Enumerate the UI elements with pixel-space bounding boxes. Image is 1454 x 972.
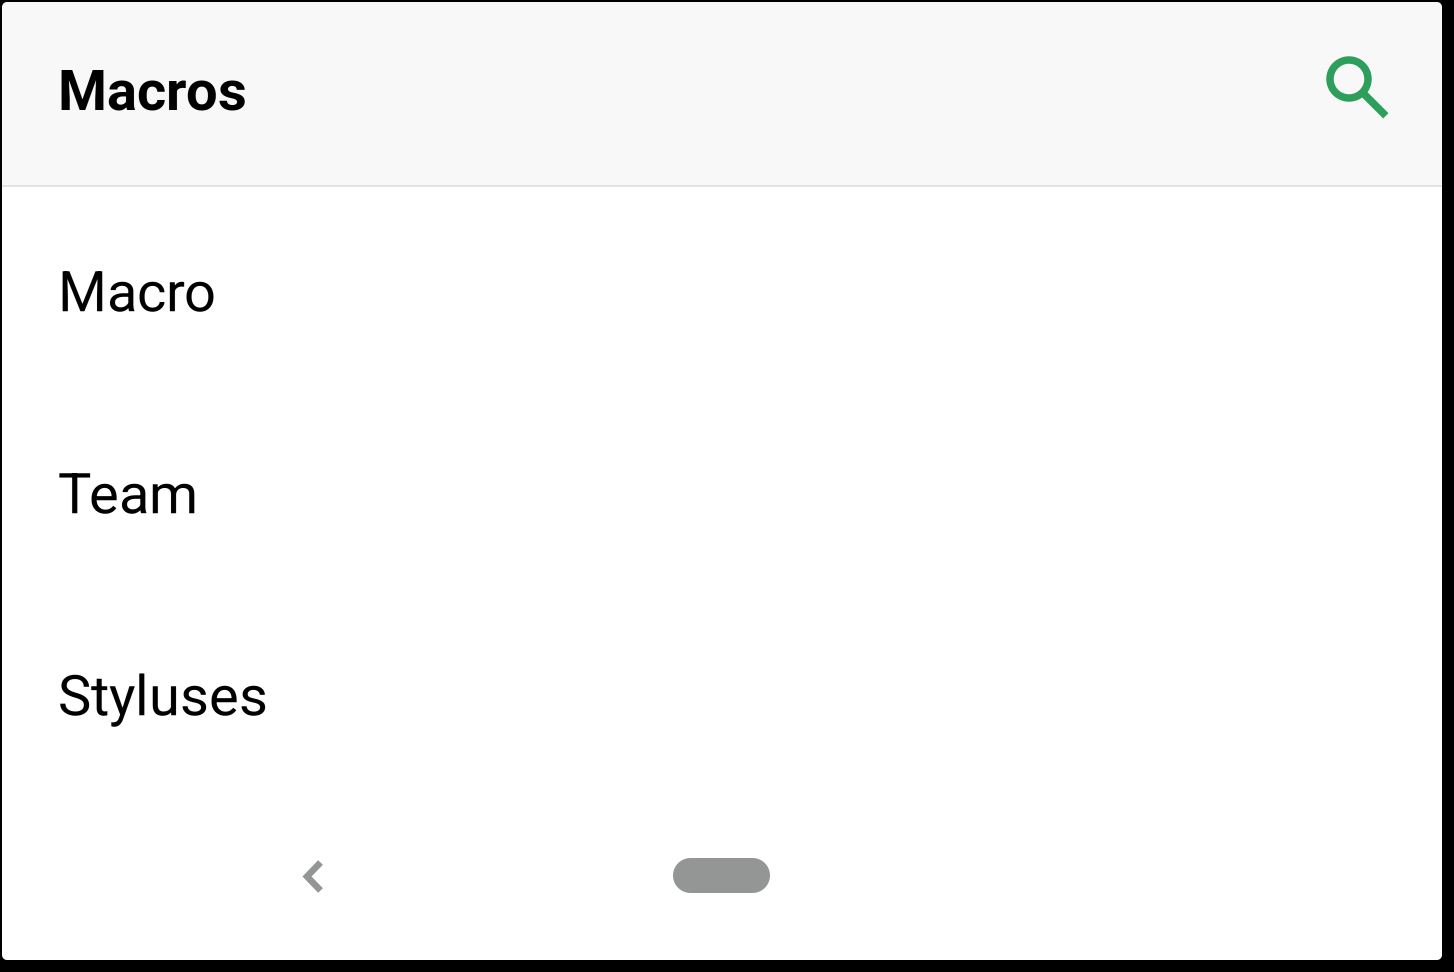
button[interactable]: Search (1311, 41, 1407, 137)
staticText: Macros (58, 58, 247, 124)
button[interactable]: Team (2, 393, 1442, 595)
button[interactable]: Back (271, 832, 363, 924)
button[interactable]: Macro (2, 191, 1442, 393)
staticText: Styluses (58, 663, 268, 729)
staticText: Macro (58, 259, 216, 325)
button[interactable]: Styluses (2, 595, 1442, 797)
staticText: Team (58, 461, 198, 527)
